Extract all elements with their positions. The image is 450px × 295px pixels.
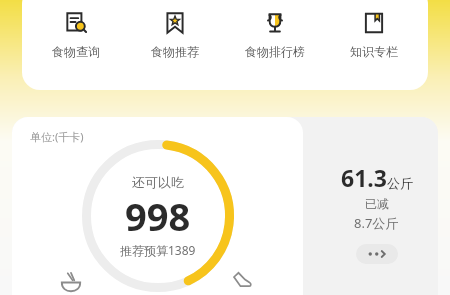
staticText: 食物查询 — [52, 44, 100, 59]
button[interactable]: 食物排行榜 — [230, 8, 320, 61]
staticText: 单位:(千卡) — [30, 129, 84, 144]
button[interactable]: More weight details — [356, 244, 398, 264]
staticText: 998 — [125, 190, 191, 242]
button[interactable]: 食物推荐 — [130, 8, 220, 61]
staticText: 知识专栏 — [350, 44, 398, 59]
button[interactable]: Record food — [54, 265, 88, 295]
staticText: 8.7公斤 — [354, 214, 399, 232]
button[interactable]: 知识专栏 — [329, 8, 419, 61]
button[interactable]: 食物查询 — [31, 8, 121, 61]
button[interactable]: 61.3 — [315, 162, 438, 264]
staticText: 还可以吃 — [132, 174, 184, 190]
staticText: 公斤 — [387, 175, 413, 191]
staticText: 61.3 — [341, 162, 387, 193]
button[interactable]: Record exercise — [225, 265, 259, 295]
staticText: 推荐预算1389 — [120, 242, 196, 258]
staticText: 食物推荐 — [151, 44, 199, 59]
staticText: 食物排行榜 — [245, 44, 305, 59]
staticText: 已减 — [365, 196, 389, 211]
